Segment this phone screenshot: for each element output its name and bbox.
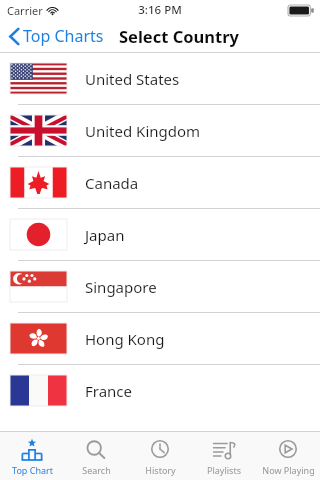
button[interactable]: Canada xyxy=(0,157,320,209)
staticText: Select Country xyxy=(119,25,239,47)
staticText: Carrier xyxy=(7,3,43,18)
staticText: France xyxy=(85,381,133,401)
button[interactable]: Singapore xyxy=(0,261,320,313)
button[interactable]: History xyxy=(128,432,192,480)
button[interactable]: Top Charts xyxy=(0,21,108,51)
staticText: Now Playing xyxy=(262,464,315,476)
staticText: History xyxy=(145,464,176,476)
staticText: Playlists xyxy=(207,464,241,476)
staticText: United Kingdom xyxy=(85,121,201,141)
staticText: Hong Kong xyxy=(85,329,165,349)
button[interactable]: Now Playing xyxy=(256,432,320,480)
button[interactable]: Search xyxy=(64,432,128,480)
staticText: Singapore xyxy=(85,277,157,297)
button[interactable]: France xyxy=(0,365,320,416)
staticText: Top Chart xyxy=(12,464,53,476)
staticText: United States xyxy=(85,69,180,89)
button[interactable]: Japan xyxy=(0,209,320,261)
button[interactable]: Top Chart xyxy=(0,432,64,480)
staticText: Top Charts xyxy=(23,25,104,47)
staticText: Search xyxy=(82,464,111,476)
button[interactable]: Hong Kong xyxy=(0,313,320,365)
button[interactable]: United States xyxy=(0,53,320,105)
button[interactable]: United Kingdom xyxy=(0,105,320,157)
staticText: Canada xyxy=(85,173,139,193)
button[interactable]: Playlists xyxy=(192,432,256,480)
staticText: 3:16 PM xyxy=(138,2,182,18)
staticText: Japan xyxy=(85,225,125,245)
